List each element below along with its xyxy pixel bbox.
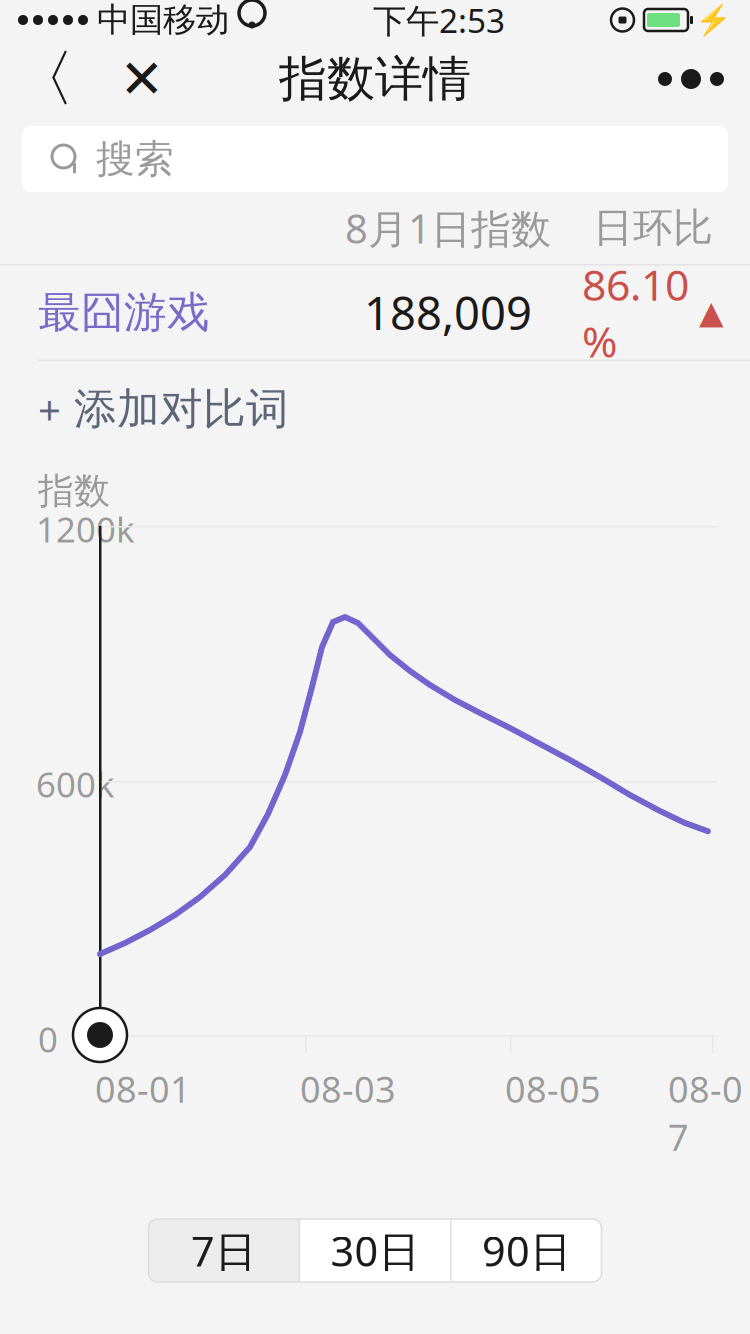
staticText: 1200k bbox=[36, 506, 135, 552]
staticText: 8月1日指数 bbox=[345, 201, 551, 254]
staticText: 0 bbox=[38, 1016, 58, 1062]
staticText: + bbox=[38, 382, 61, 435]
staticText: 08-03 bbox=[300, 1065, 396, 1113]
staticText: 〈 bbox=[13, 41, 74, 117]
staticText: 30日 bbox=[330, 1223, 419, 1278]
staticText: 600k bbox=[36, 761, 115, 807]
staticText: 搜索 bbox=[96, 135, 174, 183]
staticText: 7日 bbox=[191, 1223, 256, 1278]
staticText: 86.10% bbox=[582, 256, 689, 369]
button[interactable]: + bbox=[0, 361, 750, 457]
staticText: 188,009 bbox=[364, 282, 532, 343]
staticText: 添加对比词 bbox=[61, 383, 289, 435]
staticText: 08-01 bbox=[95, 1065, 191, 1113]
button[interactable]: 关闭 bbox=[110, 43, 174, 115]
staticText: 日环比 bbox=[593, 203, 713, 252]
staticText: 指数详情 bbox=[279, 49, 471, 108]
staticText: ✕ bbox=[119, 49, 164, 109]
staticText: 08-05 bbox=[505, 1065, 601, 1113]
staticText: 中国移动 bbox=[97, 0, 229, 40]
button[interactable]: 30日 bbox=[300, 1219, 450, 1282]
button[interactable]: 90日 bbox=[451, 1219, 601, 1282]
button[interactable]: 搜索 bbox=[22, 126, 728, 192]
staticText: 下午2:53 bbox=[373, 0, 505, 42]
staticText: 08-07 bbox=[668, 1065, 743, 1161]
staticText: 指数 bbox=[38, 469, 110, 513]
staticText: 最囧游戏 bbox=[38, 286, 210, 339]
button[interactable]: 返回 bbox=[14, 43, 74, 115]
staticText: ⚡ bbox=[695, 3, 732, 37]
staticText: ▲ bbox=[699, 294, 724, 331]
staticText: 90日 bbox=[482, 1223, 571, 1278]
button[interactable]: 7日 bbox=[148, 1219, 298, 1282]
button[interactable]: 最囧游戏 bbox=[0, 265, 750, 359]
button[interactable]: 更多 bbox=[646, 43, 736, 115]
